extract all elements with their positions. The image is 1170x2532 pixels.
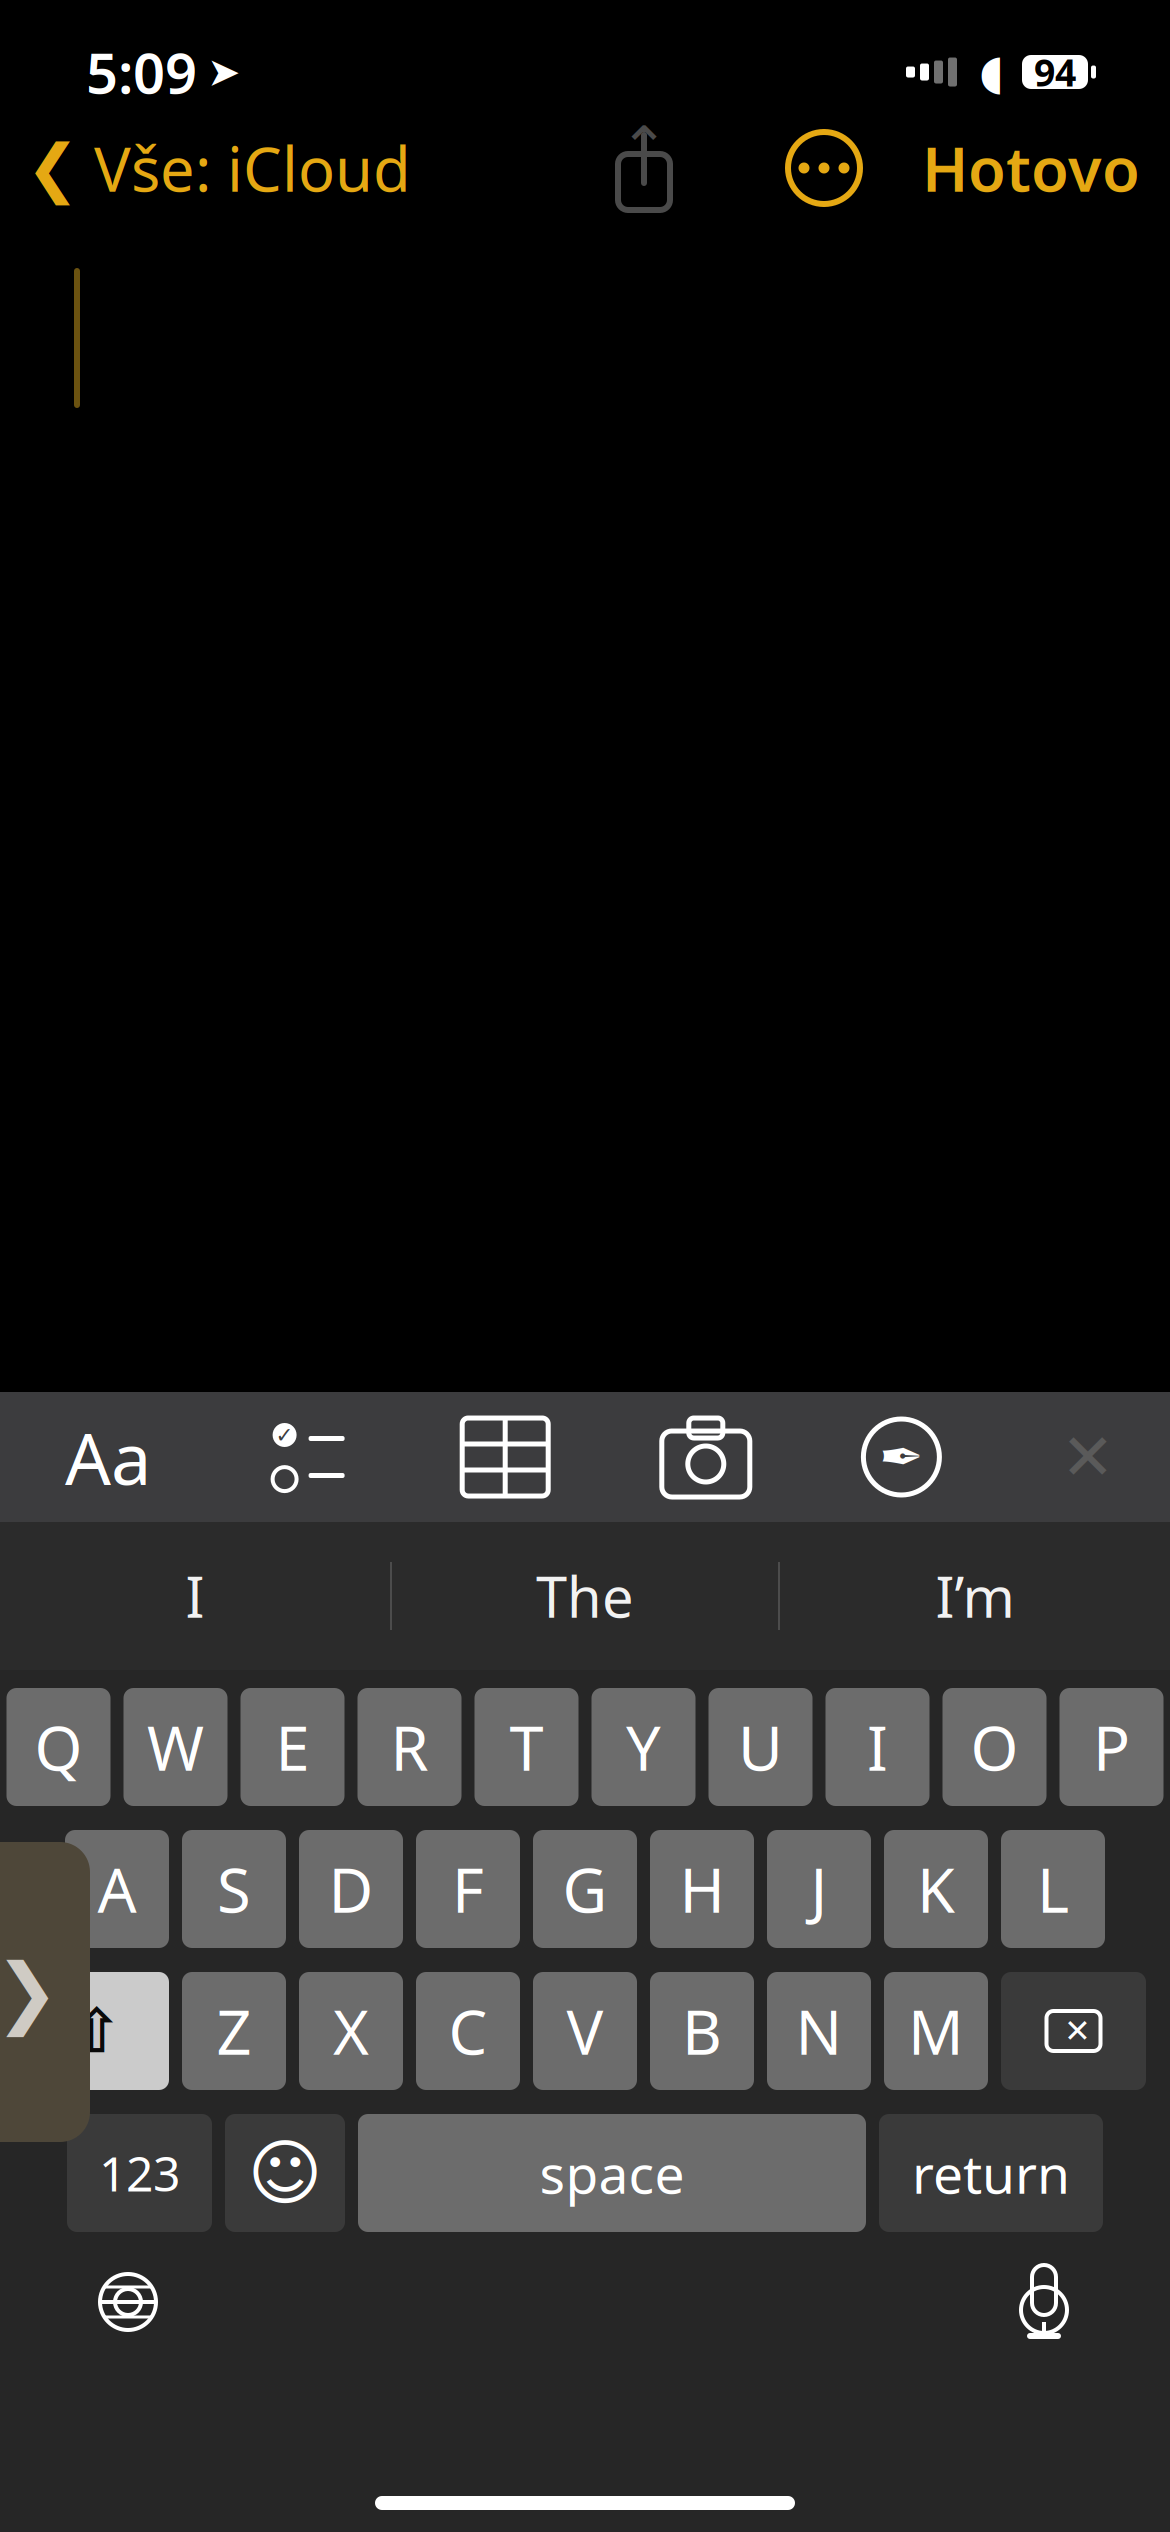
staticText: space	[539, 2138, 684, 2208]
button[interactable]: The	[392, 1540, 778, 1652]
button[interactable]: O	[942, 1688, 1046, 1806]
staticText: ❮	[26, 132, 80, 204]
button[interactable]: space	[358, 2114, 866, 2232]
staticText: C	[448, 1990, 487, 2072]
button[interactable]: C	[416, 1972, 520, 2090]
button[interactable]: Shift	[24, 1972, 169, 2090]
button[interactable]: return	[879, 2114, 1103, 2232]
button[interactable]: Table	[459, 1415, 551, 1499]
staticText: N	[795, 1990, 842, 2072]
button[interactable]: P	[1059, 1688, 1163, 1806]
button[interactable]: V	[533, 1972, 637, 2090]
button[interactable]: M	[884, 1972, 988, 2090]
button[interactable]: I	[0, 1540, 390, 1652]
staticText: M	[908, 1990, 964, 2072]
staticText: I’m	[935, 1559, 1014, 1633]
staticText: ◖	[979, 45, 1004, 99]
button[interactable]: E	[240, 1688, 344, 1806]
staticText: U	[738, 1706, 783, 1788]
button[interactable]: Camera	[659, 1415, 753, 1499]
staticText: F	[452, 1848, 484, 1930]
staticText: ⇧	[71, 1996, 122, 2066]
staticText: E	[275, 1706, 309, 1788]
button[interactable]: Dictation	[988, 2246, 1100, 2358]
button[interactable]: H	[650, 1830, 754, 1948]
staticText: H	[679, 1848, 724, 1930]
button[interactable]: Emoji	[225, 2114, 345, 2232]
staticText: Hotovo	[922, 127, 1140, 209]
button[interactable]: K	[884, 1830, 988, 1948]
button[interactable]: X	[299, 1972, 403, 2090]
button[interactable]: J	[767, 1830, 871, 1948]
button[interactable]: B	[650, 1972, 754, 2090]
staticText: G	[562, 1848, 607, 1930]
button[interactable]: Next keyboard	[72, 2246, 184, 2358]
button[interactable]: Delete	[1001, 1972, 1146, 2090]
button[interactable]: N	[767, 1972, 871, 2090]
button[interactable]: Q	[6, 1688, 110, 1806]
button[interactable]: Markup	[860, 1416, 942, 1498]
staticText: P	[1093, 1706, 1130, 1788]
staticText: 5:09	[86, 35, 197, 109]
button[interactable]: Z	[182, 1972, 286, 2090]
button[interactable]: A	[65, 1830, 169, 1948]
staticText: ⌃	[619, 115, 668, 181]
staticText: I	[185, 1559, 204, 1633]
button[interactable]: S	[182, 1830, 286, 1948]
staticText: V	[566, 1990, 603, 2072]
staticText: Vše: iCloud	[94, 127, 411, 209]
button[interactable]: ❮	[0, 115, 411, 221]
staticText: ☺	[247, 2132, 322, 2214]
button[interactable]: Hotovo	[922, 115, 1170, 221]
staticText: I	[867, 1706, 888, 1788]
button[interactable]: Close toolbar	[1050, 1419, 1126, 1495]
button[interactable]: G	[533, 1830, 637, 1948]
staticText: A	[97, 1848, 136, 1930]
staticText: W	[147, 1706, 204, 1788]
button[interactable]: I’m	[780, 1540, 1170, 1652]
staticText: J	[810, 1848, 827, 1930]
staticText: T	[509, 1706, 543, 1788]
button[interactable]: I	[825, 1688, 929, 1806]
staticText: S	[217, 1848, 251, 1930]
staticText: ➤	[207, 49, 241, 95]
staticText: Q	[34, 1706, 82, 1788]
button[interactable]: F	[416, 1830, 520, 1948]
staticText: return	[912, 2138, 1070, 2208]
staticText: ❯	[0, 1948, 59, 2036]
button[interactable]: U	[708, 1688, 812, 1806]
staticText: L	[1037, 1848, 1069, 1930]
button[interactable]: W	[123, 1688, 227, 1806]
staticText: ✕	[1061, 1421, 1115, 1493]
staticText: R	[390, 1706, 428, 1788]
staticText: D	[328, 1848, 373, 1930]
staticText: Y	[626, 1706, 661, 1788]
button[interactable]: L	[1001, 1830, 1105, 1948]
button[interactable]: Checklist	[266, 1417, 352, 1497]
button[interactable]: D	[299, 1830, 403, 1948]
button[interactable]: Text style	[58, 1411, 158, 1503]
staticText: Z	[216, 1990, 251, 2072]
staticText: ✒	[879, 1427, 924, 1487]
staticText: O	[970, 1706, 1018, 1788]
button[interactable]: T	[474, 1688, 578, 1806]
button[interactable]: More options	[784, 128, 864, 208]
button[interactable]: Share	[608, 124, 680, 212]
staticText: B	[682, 1990, 722, 2072]
staticText: ✓	[276, 1423, 294, 1447]
button[interactable]: Y	[591, 1688, 695, 1806]
staticText: K	[917, 1848, 955, 1930]
staticText: 123	[99, 2141, 180, 2205]
staticText: The	[536, 1559, 634, 1633]
button[interactable]: 123	[67, 2114, 212, 2232]
staticText: Aa	[65, 1409, 151, 1505]
staticText: 94	[1034, 47, 1076, 97]
button[interactable]: R	[357, 1688, 461, 1806]
staticText: ✕	[1064, 2013, 1091, 2049]
staticText: X	[333, 1990, 369, 2072]
